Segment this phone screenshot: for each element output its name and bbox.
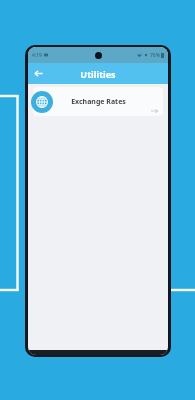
button[interactable]: Exchange Rates: [31, 91, 53, 113]
button[interactable]: Exchange Rates: [33, 87, 163, 116]
staticText: Exchange Rates: [71, 97, 126, 107]
button[interactable]: Back: [30, 65, 47, 82]
staticText: 76%: [150, 52, 160, 59]
staticText: Utilities: [80, 68, 116, 80]
staticText: 4:19: [32, 52, 42, 59]
